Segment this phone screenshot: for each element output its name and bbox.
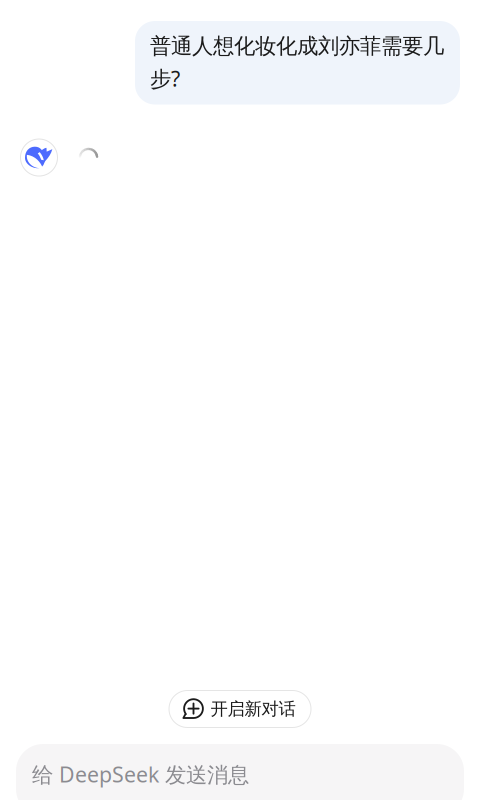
staticText: 给 DeepSeek 发送消息: [32, 760, 249, 788]
button[interactable]: 开启新对话: [168, 690, 311, 728]
staticText: 开启新对话: [210, 698, 295, 720]
staticText: 普通人想化妆化成刘亦菲需要几步?: [150, 33, 444, 92]
button[interactable]: 给 DeepSeek 发送消息: [16, 744, 464, 800]
